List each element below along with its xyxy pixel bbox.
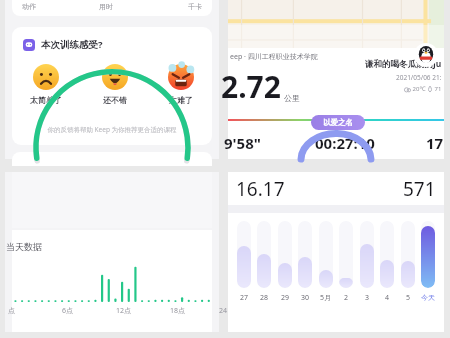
staticText: 本次训练感受?	[41, 38, 103, 51]
staticText: 点	[8, 306, 15, 315]
staticText: 00:27:10	[315, 133, 375, 153]
staticText: 4	[385, 293, 390, 303]
staticText: 千卡	[188, 2, 202, 11]
staticText: 2.72	[221, 66, 281, 107]
button[interactable]: 太难了	[162, 62, 200, 107]
staticText: 5	[406, 293, 411, 303]
staticText: 20℃	[411, 85, 427, 93]
staticText: eep · 四川工程职业技术学院	[230, 52, 318, 62]
staticText: 5月	[320, 293, 332, 303]
button[interactable]: 太简单了	[24, 62, 68, 107]
staticText: 当天数据	[6, 241, 42, 252]
staticText: 今天	[421, 293, 435, 302]
staticText: 571	[403, 176, 436, 202]
staticText: 太难了	[169, 95, 193, 105]
staticText: 24	[219, 306, 228, 316]
staticText: 用时	[99, 2, 113, 11]
button[interactable]: 4	[380, 221, 394, 303]
staticText: 9'58"	[224, 133, 261, 153]
staticText: 以爱之名	[323, 118, 353, 127]
staticText: 30	[301, 293, 310, 303]
button[interactable]: 30	[298, 221, 312, 303]
staticText: 太简单了	[30, 95, 62, 105]
staticText: 动作	[22, 2, 36, 11]
staticText: 3	[365, 293, 370, 303]
staticText: 71	[433, 85, 442, 93]
button[interactable]: QQ share	[413, 42, 439, 68]
staticText: 公里	[284, 93, 300, 103]
staticText: 29	[281, 293, 290, 303]
staticText: 12点	[116, 306, 132, 316]
button[interactable]: 5月	[319, 221, 333, 303]
staticText: 18点	[170, 306, 186, 316]
staticText: 16.17	[236, 176, 285, 202]
button[interactable]: 5	[401, 221, 415, 303]
button[interactable]: 还不错	[96, 62, 134, 107]
button[interactable]: 28	[257, 221, 271, 303]
staticText: 还不错	[103, 95, 127, 105]
staticText: 27	[240, 293, 249, 303]
button[interactable]: 3	[360, 221, 374, 303]
staticText: 2021/05/06 21:	[396, 73, 442, 82]
button[interactable]: 27	[237, 221, 251, 303]
staticText: 你的反馈将帮助 Keep 为你推荐更合适的课程	[12, 125, 212, 134]
staticText: 17	[426, 133, 444, 153]
staticText: 谦和的喝冬瓜汤的Ju	[365, 58, 442, 70]
button[interactable]: 29	[278, 221, 292, 303]
staticText: 28	[260, 293, 269, 303]
staticText: 2	[344, 293, 349, 303]
button[interactable]: 2	[339, 221, 353, 303]
button[interactable]: 今天	[421, 221, 435, 302]
staticText: 6点	[62, 306, 74, 316]
